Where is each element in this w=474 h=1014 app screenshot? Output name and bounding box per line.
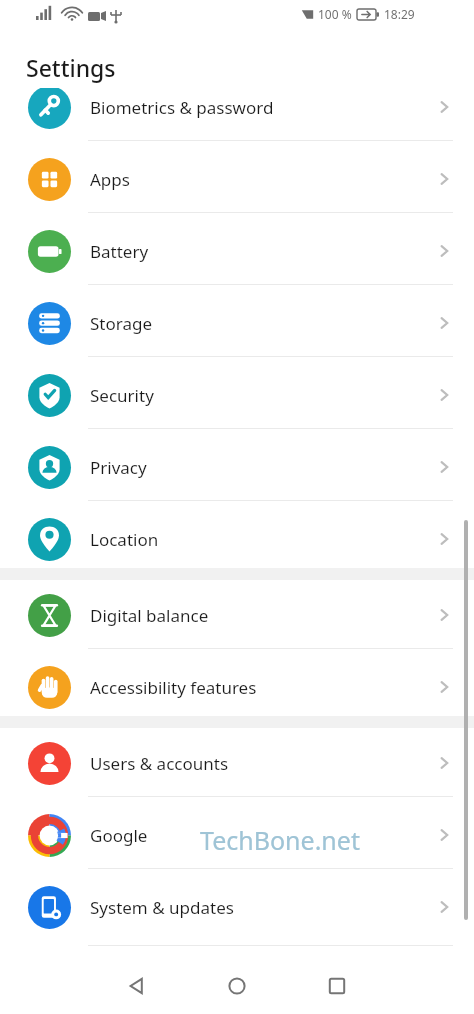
button[interactable]: Location — [0, 506, 474, 572]
staticText: System & updates — [90, 896, 234, 919]
staticText: 18:29 — [384, 6, 415, 22]
staticText: Biometrics & password — [90, 96, 274, 119]
button[interactable]: System & updates — [0, 874, 474, 940]
button[interactable]: Privacy — [0, 434, 474, 500]
button[interactable]: Recent apps — [317, 966, 357, 1006]
button[interactable]: Battery — [0, 218, 474, 284]
staticText: TechBone.net — [200, 823, 360, 857]
button[interactable]: Digital balance — [0, 582, 474, 648]
button[interactable]: Google — [0, 802, 474, 868]
staticText: Location — [90, 528, 159, 551]
button[interactable]: Storage — [0, 290, 474, 356]
staticText: Security — [90, 384, 154, 407]
staticText: Settings — [26, 52, 116, 83]
staticText: Accessibility features — [90, 676, 257, 699]
button[interactable]: Back — [117, 966, 157, 1006]
staticText: Storage — [90, 312, 153, 335]
staticText: Google — [90, 824, 148, 847]
button[interactable]: Security — [0, 362, 474, 428]
staticText: Apps — [90, 168, 130, 191]
staticText: Digital balance — [90, 604, 209, 627]
button[interactable]: Biometrics & password — [0, 88, 474, 140]
button[interactable]: Accessibility features — [0, 654, 474, 720]
staticText: Privacy — [90, 456, 147, 479]
staticText: 100 % — [318, 6, 352, 22]
button[interactable]: Home — [217, 966, 257, 1006]
button[interactable]: Apps — [0, 146, 474, 212]
button[interactable]: Users & accounts — [0, 730, 474, 796]
staticText: Users & accounts — [90, 752, 229, 775]
staticText: Battery — [90, 240, 149, 263]
